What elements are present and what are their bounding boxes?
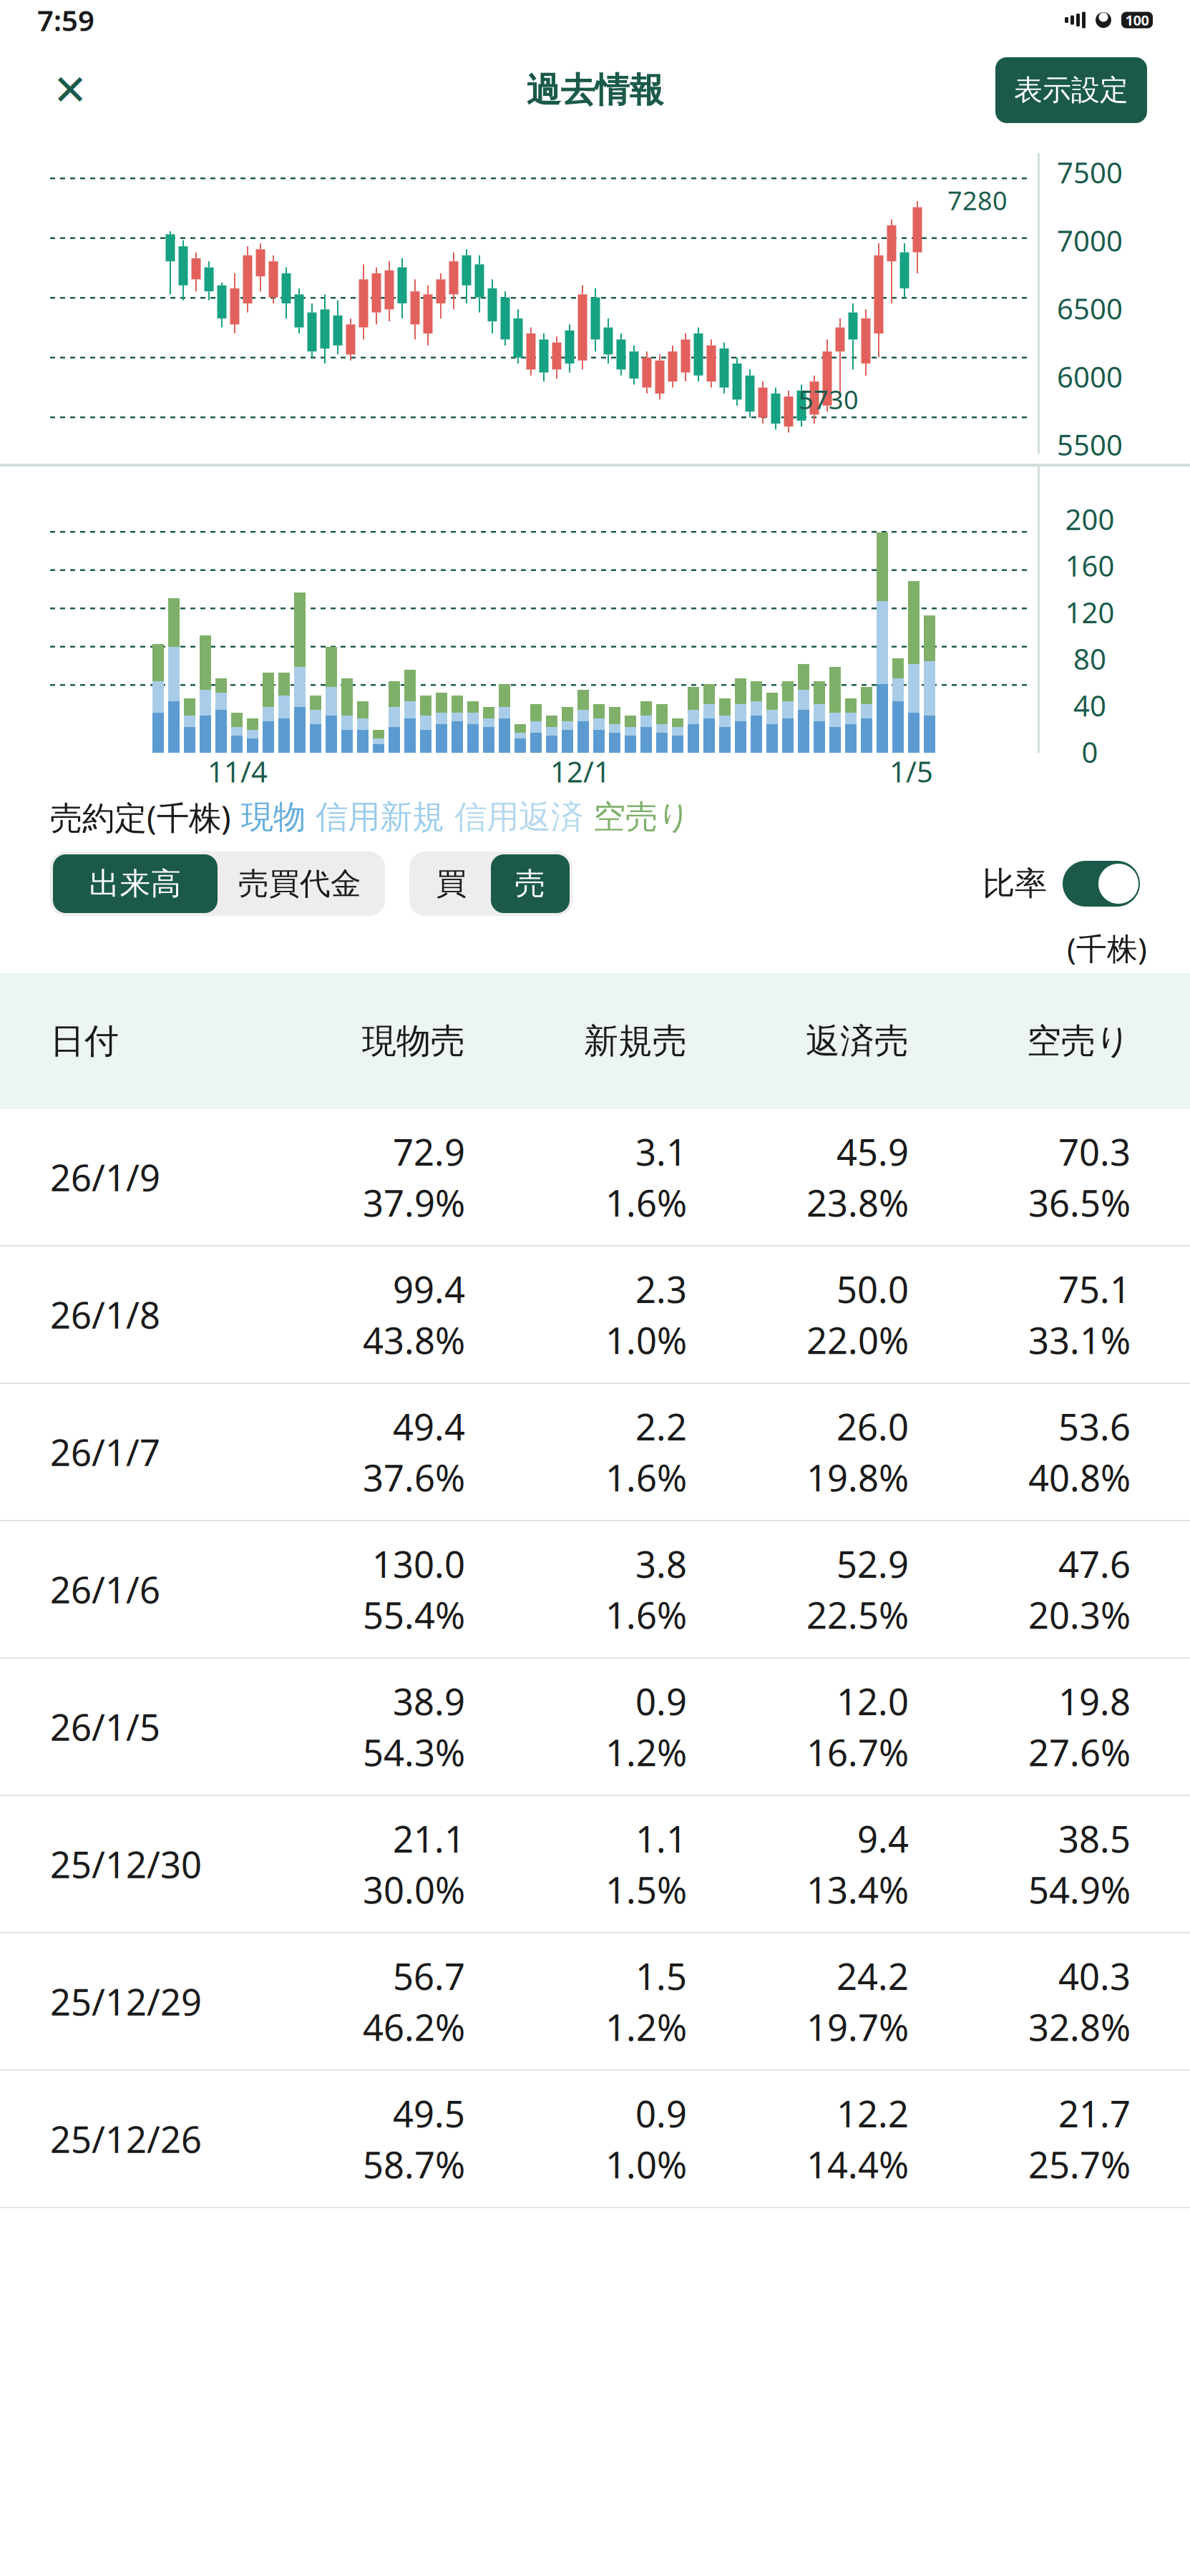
staticText: 26.0 bbox=[837, 1402, 909, 1450]
staticText: 80 bbox=[1073, 640, 1106, 678]
staticText: 21.7 bbox=[1058, 2089, 1131, 2137]
button[interactable]: 25/12/26 bbox=[0, 2071, 1190, 2208]
staticText: 45.9 bbox=[837, 1128, 909, 1176]
staticText: 52.9 bbox=[837, 1540, 909, 1588]
staticText: 空売り bbox=[583, 797, 691, 837]
staticText: 3.8 bbox=[635, 1540, 687, 1588]
staticText: 16.7% bbox=[806, 1728, 909, 1776]
staticText: 過去情報 bbox=[526, 69, 664, 111]
staticText: 40 bbox=[1073, 686, 1106, 724]
button[interactable]: 25/12/30 bbox=[0, 1796, 1190, 1933]
button[interactable]: 閉じる bbox=[43, 63, 97, 117]
staticText: 現物 bbox=[231, 797, 306, 837]
staticText: 比率 bbox=[982, 864, 1047, 904]
staticText: 日付 bbox=[50, 1020, 119, 1062]
staticText: 26/1/7 bbox=[50, 1428, 160, 1476]
staticText: 47.6 bbox=[1058, 1540, 1131, 1588]
staticText: 0.9 bbox=[635, 2089, 687, 2137]
staticText: 信用新規 bbox=[306, 797, 444, 837]
staticText: 22.5% bbox=[806, 1591, 909, 1639]
staticText: 12.0 bbox=[837, 1677, 909, 1725]
button[interactable]: 26/1/6 bbox=[0, 1521, 1190, 1659]
staticText: 56.7 bbox=[393, 1952, 465, 2000]
staticText: 200 bbox=[1065, 500, 1115, 538]
staticText: 売 bbox=[515, 865, 546, 902]
staticText: 2.2 bbox=[635, 1402, 687, 1450]
staticText: 信用返済 bbox=[444, 797, 583, 837]
staticText: 38.9 bbox=[393, 1677, 465, 1725]
staticText: 37.9% bbox=[363, 1179, 465, 1227]
staticText: 1.1 bbox=[635, 1814, 687, 1863]
staticText: 23.8% bbox=[806, 1179, 909, 1227]
staticText: 25/12/30 bbox=[50, 1840, 202, 1888]
staticText: 9.4 bbox=[857, 1814, 909, 1863]
staticText: 19.8% bbox=[806, 1453, 909, 1501]
staticText: 1.6% bbox=[605, 1591, 687, 1639]
staticText: 1.6% bbox=[605, 1179, 687, 1227]
staticText: 38.5 bbox=[1058, 1814, 1131, 1863]
staticText: 120 bbox=[1065, 593, 1115, 631]
staticText: 0 bbox=[1082, 733, 1098, 771]
staticText: ✕ bbox=[53, 66, 88, 114]
staticText: 7000 bbox=[1057, 221, 1123, 259]
staticText: 55.4% bbox=[363, 1591, 465, 1639]
staticText: 6500 bbox=[1057, 289, 1123, 327]
staticText: 26/1/5 bbox=[50, 1703, 160, 1751]
button[interactable]: 26/1/7 bbox=[0, 1384, 1190, 1521]
staticText: 75.1 bbox=[1058, 1265, 1131, 1313]
staticText: 1/5 bbox=[889, 752, 933, 790]
button[interactable]: 比率 bbox=[1063, 861, 1140, 907]
staticText: 54.3% bbox=[363, 1728, 465, 1776]
staticText: 1.0% bbox=[605, 2140, 687, 2188]
staticText: 25.7% bbox=[1028, 2140, 1131, 2188]
staticText: 空売り bbox=[1027, 1020, 1131, 1062]
button[interactable]: 売 bbox=[491, 854, 570, 913]
staticText: 5500 bbox=[1057, 426, 1123, 464]
staticText: 22.0% bbox=[806, 1316, 909, 1364]
staticText: 3.1 bbox=[635, 1128, 687, 1176]
staticText: 7500 bbox=[1057, 153, 1123, 191]
staticText: 43.8% bbox=[363, 1316, 465, 1364]
button[interactable]: 出来高 bbox=[53, 854, 218, 913]
staticText: 26/1/9 bbox=[50, 1153, 160, 1201]
staticText: 1.5 bbox=[635, 1952, 687, 2000]
staticText: 72.9 bbox=[393, 1128, 465, 1176]
button[interactable]: 売買代金 bbox=[218, 854, 382, 913]
button[interactable]: 26/1/8 bbox=[0, 1246, 1190, 1384]
staticText: 買 bbox=[436, 865, 467, 902]
staticText: 7:59 bbox=[37, 1, 94, 39]
staticText: 1.2% bbox=[605, 1728, 687, 1776]
staticText: 30.0% bbox=[363, 1865, 465, 1914]
staticText: 26/1/8 bbox=[50, 1290, 160, 1339]
staticText: 14.4% bbox=[806, 2140, 909, 2188]
button[interactable]: 26/1/9 bbox=[0, 1109, 1190, 1246]
staticText: 54.9% bbox=[1028, 1865, 1131, 1914]
button[interactable]: 26/1/5 bbox=[0, 1659, 1190, 1796]
staticText: 1.5% bbox=[605, 1865, 687, 1914]
button[interactable]: 買 bbox=[412, 854, 491, 913]
staticText: 70.3 bbox=[1058, 1128, 1131, 1176]
staticText: 表示設定 bbox=[1014, 73, 1128, 108]
button[interactable]: 25/12/29 bbox=[0, 1933, 1190, 2071]
staticText: 160 bbox=[1065, 547, 1115, 585]
staticText: 58.7% bbox=[363, 2140, 465, 2188]
staticText: 49.4 bbox=[393, 1402, 465, 1450]
staticText: 出来高 bbox=[89, 865, 181, 902]
staticText: 13.4% bbox=[806, 1865, 909, 1914]
staticText: 5730 bbox=[799, 382, 859, 416]
staticText: 売約定(千株) bbox=[50, 796, 231, 839]
staticText: 1.6% bbox=[605, 1453, 687, 1501]
staticText: 0.9 bbox=[635, 1677, 687, 1725]
staticText: 50.0 bbox=[837, 1265, 909, 1313]
staticText: 130.0 bbox=[372, 1540, 465, 1588]
staticText: 2.3 bbox=[635, 1265, 687, 1313]
staticText: 36.5% bbox=[1028, 1179, 1131, 1227]
staticText: 33.1% bbox=[1028, 1316, 1131, 1364]
staticText: 32.8% bbox=[1028, 2003, 1131, 2051]
staticText: 新規売 bbox=[584, 1020, 687, 1062]
button[interactable]: 表示設定 bbox=[995, 57, 1147, 123]
staticText: 40.3 bbox=[1058, 1952, 1131, 2000]
staticText: 49.5 bbox=[393, 2089, 465, 2137]
staticText: 46.2% bbox=[363, 2003, 465, 2051]
staticText: 21.1 bbox=[393, 1814, 465, 1863]
